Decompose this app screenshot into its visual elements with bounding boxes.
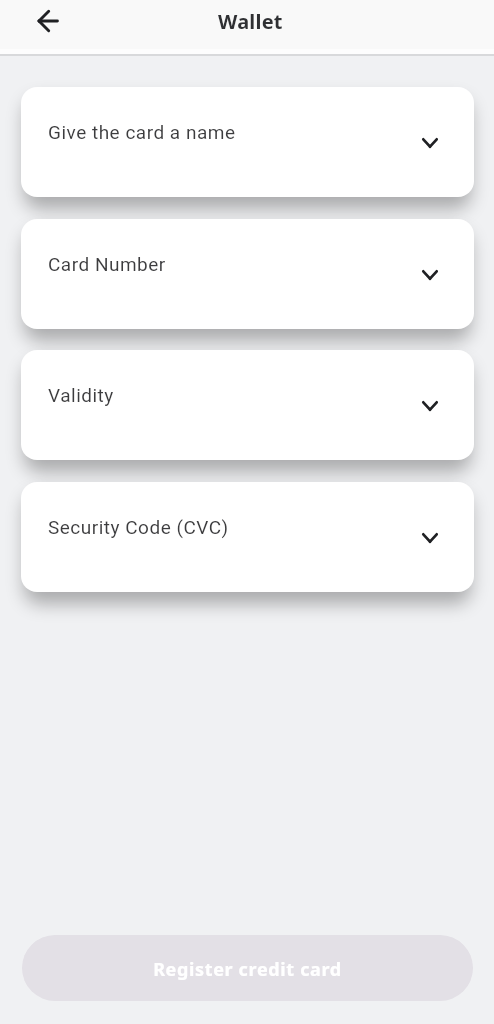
- button[interactable]: Back: [29, 1, 69, 41]
- button[interactable]: Card Number: [21, 219, 474, 329]
- staticText: Card Number: [48, 253, 166, 275]
- staticText: Give the card a name: [48, 121, 236, 143]
- staticText: Register credit card: [153, 957, 342, 982]
- button[interactable]: Security Code (CVC): [21, 482, 474, 592]
- staticText: Security Code (CVC): [48, 516, 229, 538]
- button[interactable]: Register credit card: [22, 935, 473, 1001]
- button[interactable]: Validity: [21, 350, 474, 460]
- staticText: Validity: [48, 384, 114, 406]
- button[interactable]: Give the card a name: [21, 87, 474, 197]
- staticText: Wallet: [218, 8, 283, 35]
